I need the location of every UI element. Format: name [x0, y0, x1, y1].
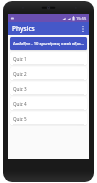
button[interactable]: Quiz 2 — [10, 67, 87, 80]
button[interactable]: Quiz 1 — [10, 52, 87, 65]
button[interactable]: Quiz 3 — [10, 82, 87, 95]
staticText: Physics — [12, 24, 35, 33]
button[interactable]: Quiz 4 — [10, 97, 87, 110]
staticText: Quiz 2 — [13, 71, 27, 77]
staticText: Διαλέξτε - 10 ερωτήσεις κατά αξιολόγηση — [13, 41, 84, 47]
button[interactable]: More options — [76, 22, 89, 35]
button[interactable]: Quiz 5 — [10, 112, 87, 125]
staticText: 15:55 — [76, 16, 87, 21]
staticText: Quiz 3 — [13, 86, 27, 92]
staticText: Quiz 1 — [13, 56, 27, 62]
button[interactable]: Διαλέξτε - 10 ερωτήσεις κατά αξιολόγηση — [10, 37, 87, 50]
staticText: Quiz 5 — [13, 116, 27, 122]
staticText: Quiz 4 — [13, 101, 27, 107]
